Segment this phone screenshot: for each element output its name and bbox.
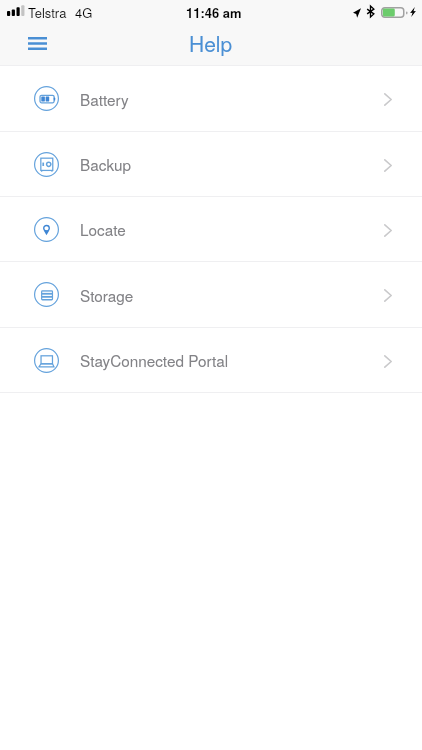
- staticText: Telstra: [28, 3, 67, 22]
- staticText: 4G: [75, 3, 93, 22]
- staticText: Battery: [80, 88, 129, 110]
- button[interactable]: StayConnected Portal: [0, 328, 422, 392]
- staticText: 11:46 am: [186, 3, 242, 22]
- staticText: StayConnected Portal: [80, 349, 229, 371]
- staticText: Help: [189, 28, 233, 58]
- button[interactable]: Storage: [0, 262, 422, 327]
- button[interactable]: Battery: [0, 66, 422, 131]
- staticText: Locate: [80, 218, 126, 240]
- staticText: Storage: [80, 284, 134, 306]
- button[interactable]: Locate: [0, 197, 422, 261]
- staticText: Backup: [80, 153, 131, 175]
- button[interactable]: Menu: [16, 23, 58, 64]
- button[interactable]: Backup: [0, 132, 422, 196]
